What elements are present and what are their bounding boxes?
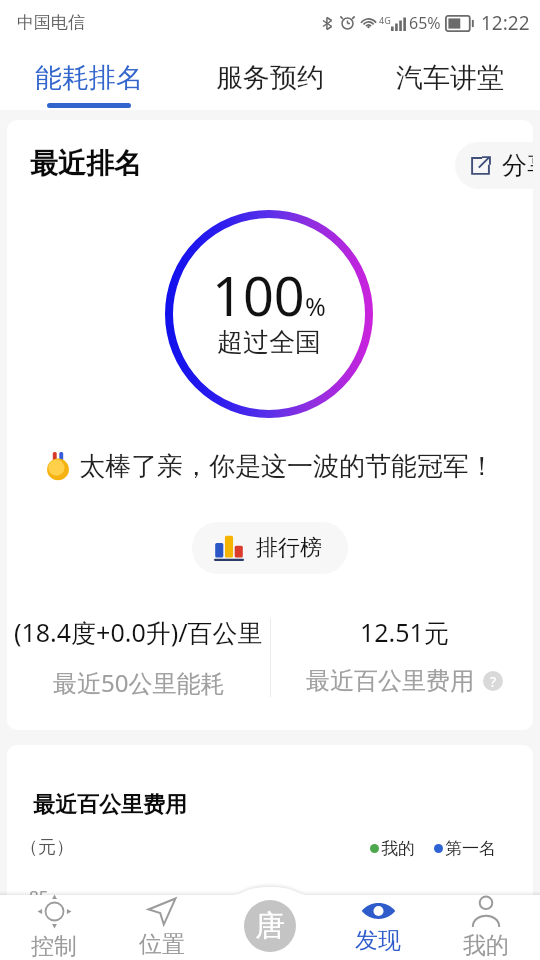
button[interactable]: 分享 (455, 142, 533, 189)
staticText: 超过全国 (217, 326, 321, 359)
button[interactable]: 唐 (244, 900, 296, 952)
staticText: 控制 (31, 932, 77, 960)
button[interactable]: 我的 (432, 893, 540, 960)
staticText: 最近排名 (30, 146, 142, 181)
staticText: 12:22 (481, 10, 530, 36)
staticText: ? (490, 672, 497, 691)
staticText: 4G (379, 14, 391, 26)
staticText: 发现 (355, 926, 401, 955)
staticText: 唐 (255, 907, 285, 945)
button[interactable]: 服务预约 (205, 61, 335, 110)
button[interactable]: 位置 (108, 893, 216, 960)
staticText: 太棒了亲，你是这一波的节能冠军！ (79, 450, 495, 483)
staticText: 12.51元 (360, 615, 449, 649)
button[interactable]: 说明 (483, 671, 503, 691)
button[interactable]: 能耗排名 (24, 61, 154, 110)
staticText: 位置 (139, 930, 185, 959)
staticText: 服务预约 (216, 61, 324, 95)
staticText: (18.4度+0.0升)/百公里 (14, 615, 263, 649)
staticText: 最近百公里费用 (306, 666, 474, 696)
staticText: 我的 (381, 838, 415, 859)
staticText: % (305, 289, 326, 323)
staticText: 最近50公里能耗 (53, 666, 225, 699)
staticText: 能耗排名 (35, 61, 143, 95)
staticText: 最近百公里费用 (33, 791, 187, 819)
staticText: 65% (409, 12, 441, 34)
staticText: 排行榜 (256, 534, 322, 562)
staticText: 我的 (463, 931, 509, 960)
button[interactable]: 控制 (0, 893, 108, 960)
button[interactable]: 汽车讲堂 (385, 61, 515, 110)
staticText: （元） (20, 836, 74, 859)
button[interactable]: 排行榜 (192, 522, 348, 574)
staticText: 分享 (502, 150, 533, 181)
staticText: 汽车讲堂 (396, 61, 504, 95)
staticText: 第一名 (445, 838, 496, 859)
staticText: 85 (29, 885, 49, 908)
staticText: 100 (212, 258, 305, 332)
staticText: 中国电信 (17, 12, 85, 33)
button[interactable]: 发现 (324, 893, 432, 960)
